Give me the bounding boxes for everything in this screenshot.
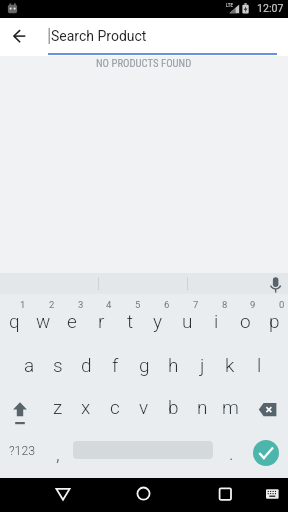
button[interactable] (4, 21, 34, 51)
button[interactable]: u (173, 304, 201, 338)
staticText: e (67, 310, 77, 332)
staticText: 1 (20, 299, 26, 310)
staticText: 0 (279, 299, 285, 310)
staticText: 6 (164, 299, 170, 310)
staticText: p (269, 310, 280, 332)
staticText: 2 (49, 299, 55, 310)
button[interactable]: . (218, 435, 244, 471)
staticText: c (110, 396, 120, 418)
staticText: k (225, 354, 235, 376)
button[interactable]: w (29, 304, 57, 338)
staticText: r (98, 310, 105, 332)
button[interactable]: c (101, 387, 129, 427)
staticText: 3 (78, 299, 84, 310)
button[interactable]: l (245, 345, 273, 385)
button[interactable] (262, 271, 288, 296)
button[interactable]: n (188, 387, 216, 427)
staticText: j (200, 354, 205, 376)
staticText: Search Product (51, 28, 147, 44)
button[interactable]: y (144, 304, 172, 338)
staticText: h (168, 354, 179, 376)
button[interactable] (108, 478, 178, 512)
button[interactable] (252, 439, 280, 467)
staticText: w (36, 310, 51, 332)
staticText: x (81, 396, 91, 418)
staticText: n (197, 396, 208, 418)
button[interactable]: f (101, 345, 129, 385)
button[interactable]: d (72, 345, 100, 385)
button[interactable]: , (45, 436, 71, 472)
staticText: s (53, 354, 63, 376)
button[interactable] (0, 18, 288, 56)
staticText: b (168, 396, 179, 418)
button[interactable]: s (44, 345, 72, 385)
staticText: f (112, 354, 119, 376)
button[interactable]: g (130, 345, 158, 385)
button[interactable]: t (116, 304, 144, 338)
staticText: u (182, 310, 193, 332)
staticText: ?123 (9, 444, 36, 458)
button[interactable]: m (216, 387, 244, 427)
button[interactable] (248, 396, 286, 424)
staticText: NO PRODUCTS FOUND (96, 57, 192, 70)
staticText: 5 (135, 299, 141, 310)
button[interactable] (2, 396, 42, 424)
staticText: . (229, 442, 234, 464)
button[interactable]: p (260, 304, 288, 338)
staticText: a (24, 354, 35, 376)
staticText: d (81, 354, 92, 376)
staticText: g (139, 354, 150, 376)
staticText: t (127, 310, 134, 332)
staticText: o (240, 310, 251, 332)
staticText: i (214, 310, 219, 332)
button[interactable]: j (188, 345, 216, 385)
staticText: 12:07 (257, 2, 284, 14)
button[interactable]: v (130, 387, 158, 427)
button[interactable]: r (87, 304, 115, 338)
staticText: LTE (226, 3, 234, 8)
button[interactable]: ?123 (3, 433, 41, 469)
staticText: 7 (193, 299, 199, 310)
staticText: 9 (250, 299, 256, 310)
staticText: q (9, 310, 20, 332)
button[interactable]: z (44, 387, 72, 427)
button[interactable]: k (216, 345, 244, 385)
button[interactable]: a (15, 345, 43, 385)
button[interactable] (28, 478, 98, 512)
staticText: l (257, 354, 262, 376)
button[interactable] (190, 478, 260, 512)
button[interactable]: e (58, 304, 86, 338)
button[interactable] (260, 480, 286, 510)
staticText: m (222, 396, 239, 418)
button[interactable]: x (72, 387, 100, 427)
staticText: z (53, 396, 63, 418)
staticText: 8 (222, 299, 228, 310)
button[interactable]: i (202, 304, 230, 338)
staticText: , (56, 443, 60, 465)
button[interactable]: q (0, 304, 28, 338)
button[interactable]: b (159, 387, 187, 427)
button[interactable]: h (159, 345, 187, 385)
staticText: 4 (106, 299, 112, 310)
staticText: y (153, 310, 163, 332)
button[interactable]: o (231, 304, 259, 338)
staticText: v (139, 396, 149, 418)
